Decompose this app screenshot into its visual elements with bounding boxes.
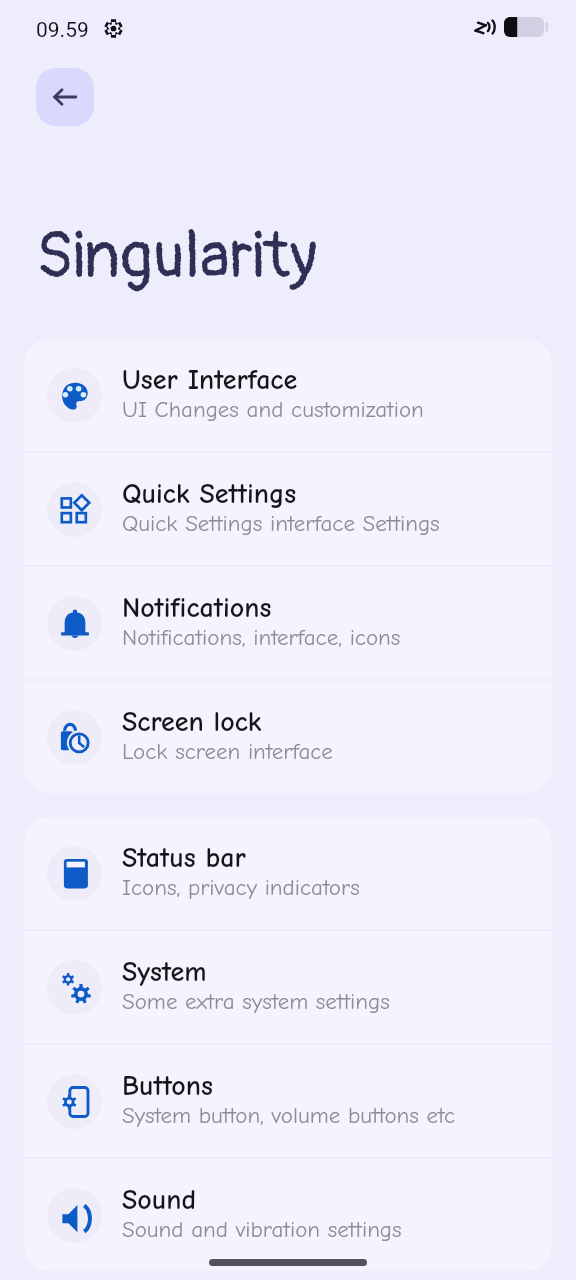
button[interactable]: Sound	[24, 1159, 552, 1271]
button[interactable]: Quick Settings	[24, 453, 552, 565]
button[interactable]: System	[24, 931, 552, 1043]
staticText: Quick Settings	[122, 478, 297, 510]
staticText: UI Changes and customization	[122, 396, 424, 422]
button[interactable]: Back	[36, 68, 94, 126]
button[interactable]: Buttons	[24, 1045, 552, 1157]
staticText: Notifications, interface, icons	[122, 624, 401, 650]
staticText: 09.59	[36, 18, 89, 43]
staticText: Status bar	[122, 842, 246, 874]
staticText: Quick Settings interface Settings	[122, 510, 440, 536]
staticText: Screen lock	[122, 706, 262, 738]
staticText: Lock screen interface	[122, 738, 333, 764]
staticText: Sound	[122, 1184, 197, 1216]
staticText: Singularity	[36, 217, 318, 297]
staticText: Sound and vibration settings	[122, 1216, 402, 1242]
staticText: Buttons	[122, 1070, 213, 1102]
staticText: System	[122, 956, 207, 988]
button[interactable]: User Interface	[24, 339, 552, 451]
staticText: Notifications	[122, 592, 272, 624]
staticText: User Interface	[122, 364, 298, 396]
button[interactable]: Notifications	[24, 567, 552, 679]
button[interactable]: Status bar	[24, 817, 552, 929]
staticText: Icons, privacy indicators	[122, 874, 360, 900]
staticText: Some extra system settings	[122, 988, 390, 1014]
button[interactable]: Screen lock	[24, 681, 552, 793]
staticText: System button, volume buttons etc	[122, 1102, 456, 1128]
